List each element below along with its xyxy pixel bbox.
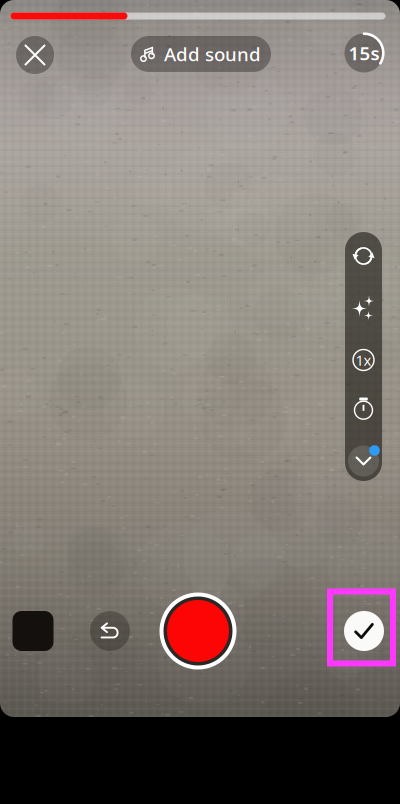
button[interactable]: Undo [90,611,130,651]
button[interactable]: More options [345,441,382,481]
staticText: Add sound [164,42,261,66]
staticText: 15s [348,41,379,65]
button[interactable]: Effects [345,286,382,330]
button[interactable]: Record [159,592,236,669]
button[interactable]: Close [16,36,54,74]
button[interactable]: Speed [345,338,382,382]
button[interactable]: Timer [345,386,382,430]
button[interactable]: Upload [12,611,53,651]
button[interactable]: Done [327,588,400,673]
button[interactable]: Add sound [131,36,271,72]
staticText: 1x [355,350,371,370]
button[interactable]: Flip camera [345,234,382,278]
button[interactable]: Recording length 15 seconds [343,32,384,73]
